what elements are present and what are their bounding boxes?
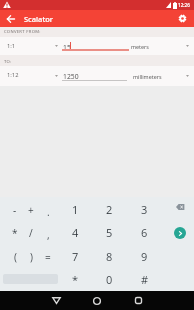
button[interactable]: - [7,199,23,220]
staticText: 1250 [63,72,79,81]
button[interactable] [0,37,194,55]
button[interactable] [174,11,190,26]
staticText: - [13,203,17,217]
staticText: + [28,203,34,217]
staticText: 8 [106,249,113,264]
button[interactable]: 0 [93,269,126,290]
button[interactable]: 4 [59,222,92,243]
staticText: / [29,226,33,240]
staticText: TO: [4,59,12,65]
staticText: 3 [141,202,148,217]
button[interactable] [47,292,65,309]
button[interactable]: , [40,222,56,243]
staticText: 15 [63,43,71,52]
staticText: 1:12 [7,71,19,79]
button[interactable]: # [128,269,161,290]
staticText: CONVERT FROM: [4,29,41,35]
button[interactable]: + [23,199,39,220]
button[interactable] [0,66,194,86]
button[interactable] [129,292,147,309]
button[interactable]: 5 [93,222,126,243]
staticText: 0 [106,272,113,287]
staticText: ( [14,250,17,264]
staticText: meters [131,43,149,50]
staticText: Scalator [24,14,54,24]
staticText: * [72,272,79,287]
button[interactable] [4,12,18,25]
button[interactable]: * [59,269,92,290]
staticText: millimeters [133,73,162,80]
button[interactable]: ( [7,246,23,267]
staticText: 4 [72,225,79,240]
button[interactable]: 2 [93,199,126,220]
staticText: . [47,205,50,219]
button[interactable]: 7 [59,246,92,267]
staticText: 12:26 [178,2,190,8]
button[interactable] [165,197,194,217]
button[interactable]: * [7,222,23,243]
button[interactable]: 3 [128,199,161,220]
button[interactable]: . [40,199,56,220]
staticText: 1:1 [7,42,16,50]
staticText: * [12,226,18,240]
button[interactable]: 6 [128,222,161,243]
staticText: 7 [72,249,79,264]
staticText: 6 [141,225,148,240]
staticText: 9 [141,249,148,264]
staticText: , [47,228,50,242]
button[interactable]: 8 [93,246,126,267]
button[interactable]: ) [23,246,39,267]
button[interactable]: = [40,246,56,267]
button[interactable] [174,227,186,239]
staticText: 2 [106,202,113,217]
staticText: 1 [72,202,79,217]
button[interactable]: 1 [59,199,92,220]
staticText: 5 [106,225,113,240]
staticText: # [141,272,149,287]
button[interactable]: 9 [128,246,161,267]
staticText: = [45,250,51,264]
button[interactable] [88,292,106,309]
staticText: ) [30,250,33,264]
button[interactable]: / [23,222,39,243]
